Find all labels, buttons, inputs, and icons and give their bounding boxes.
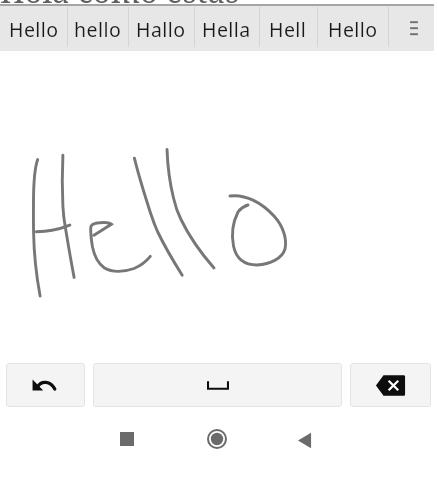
staticText: Hello: [328, 16, 378, 43]
button[interactable]: Hella: [194, 4, 259, 50]
button[interactable]: Space: [93, 363, 342, 407]
button[interactable]: Recents: [103, 415, 151, 463]
staticText: Hallo: [136, 16, 186, 43]
button[interactable]: Home: [193, 415, 241, 463]
button[interactable]: Hallo: [128, 4, 194, 50]
button[interactable]: More options: [389, 4, 435, 50]
button[interactable]: Hello: [0, 4, 67, 50]
button[interactable]: hello: [67, 4, 128, 50]
button[interactable]: Undo: [6, 363, 85, 407]
staticText: Hello: [9, 16, 59, 43]
button[interactable]: Backspace: [350, 363, 431, 407]
staticText: Hola como estas: [0, 0, 239, 4]
button[interactable]: Hell: [259, 4, 317, 50]
staticText: hello: [74, 16, 122, 43]
staticText: Hell: [269, 16, 307, 43]
button[interactable]: Hello: [317, 4, 388, 50]
staticText: Hella: [202, 16, 251, 43]
button[interactable]: Back: [280, 416, 328, 464]
